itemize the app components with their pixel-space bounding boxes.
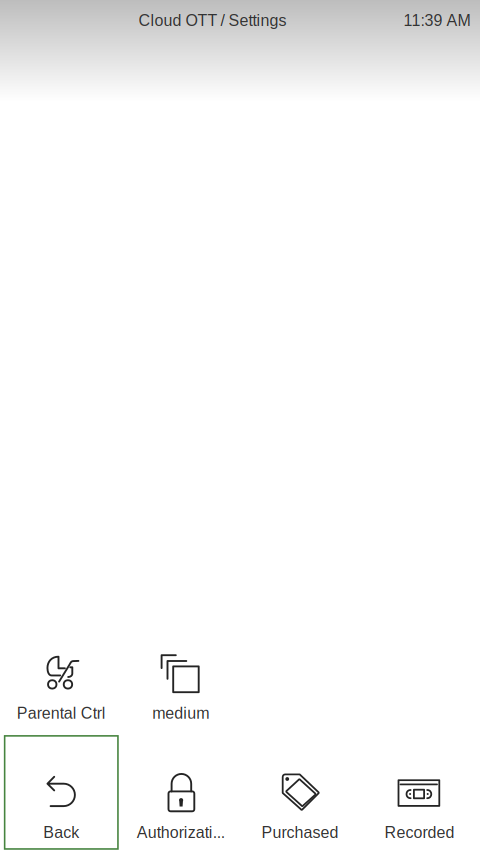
staticText: Authorizati... (137, 823, 225, 841)
button[interactable]: Parental Ctrl (2, 613, 121, 733)
staticText: Parental Ctrl (17, 704, 106, 722)
button[interactable]: medium (121, 613, 240, 733)
button[interactable]: Authorizati... (121, 733, 240, 852)
staticText: Recorded (384, 823, 454, 841)
button[interactable]: Back (2, 733, 121, 852)
staticText: medium (152, 704, 209, 722)
staticText: Back (43, 823, 79, 841)
staticText: 11:39 AM (403, 12, 470, 29)
button[interactable]: Recorded (360, 733, 479, 852)
button[interactable]: Purchased (240, 733, 360, 852)
staticText: Cloud OTT / Settings (139, 12, 287, 29)
staticText: Purchased (262, 823, 339, 841)
